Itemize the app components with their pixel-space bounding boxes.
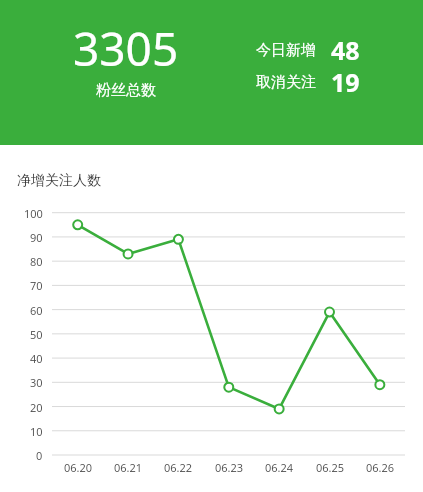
staticText: 30 xyxy=(30,375,43,390)
staticText: 70 xyxy=(30,278,43,293)
staticText: 06.26 xyxy=(366,460,395,475)
staticText: 90 xyxy=(30,230,43,245)
staticText: 粉丝总数 xyxy=(96,81,156,100)
staticText: 今日新增 xyxy=(256,41,316,60)
staticText: 50 xyxy=(30,327,43,342)
staticText: 10 xyxy=(30,424,43,439)
staticText: 19 xyxy=(331,65,360,93)
staticText: 06.24 xyxy=(265,460,294,475)
staticText: 80 xyxy=(30,254,43,269)
staticText: 06.20 xyxy=(64,460,93,475)
staticText: 06.22 xyxy=(164,460,193,475)
staticText: 20 xyxy=(30,400,43,415)
staticText: 0 xyxy=(36,448,43,463)
staticText: 净增关注人数 xyxy=(17,172,101,190)
staticText: 06.23 xyxy=(215,460,244,475)
staticText: 06.21 xyxy=(114,460,143,475)
staticText: 3305 xyxy=(73,17,179,75)
staticText: 40 xyxy=(30,351,43,366)
staticText: 取消关注 xyxy=(256,73,316,92)
staticText: 100 xyxy=(24,206,43,221)
button[interactable]: 3305 xyxy=(0,0,423,145)
staticText: 60 xyxy=(30,303,43,318)
staticText: 06.25 xyxy=(316,460,345,475)
staticText: 48 xyxy=(331,33,360,61)
